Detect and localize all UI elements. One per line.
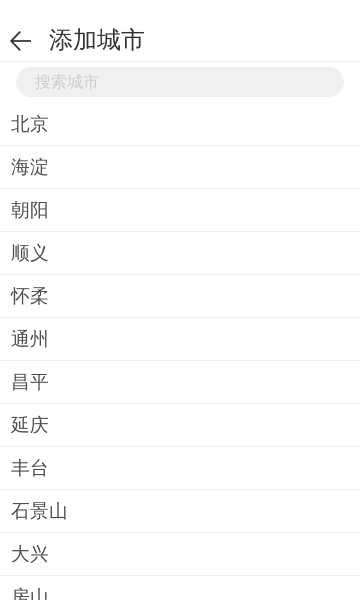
staticText: 北京 [11,112,49,135]
staticText: 丰台 [11,456,49,479]
staticText: 添加城市 [49,25,145,55]
staticText: 怀柔 [11,284,49,307]
button[interactable]: 大兴 [0,533,360,576]
staticText: 房山 [11,585,49,600]
staticText: 顺义 [11,241,49,264]
staticText: 海淀 [11,155,49,178]
button[interactable]: 丰台 [0,447,360,490]
button[interactable]: 延庆 [0,404,360,447]
staticText: 石景山 [11,499,68,522]
button[interactable]: 石景山 [0,490,360,533]
button[interactable]: 搜索城市 [0,62,360,103]
button[interactable]: 昌平 [0,361,360,404]
staticText: 大兴 [11,542,49,565]
staticText: 搜索城市 [35,72,99,92]
button[interactable]: 怀柔 [0,275,360,318]
button[interactable]: 海淀 [0,146,360,189]
button[interactable]: 通州 [0,318,360,361]
button[interactable]: 北京 [0,103,360,146]
staticText: 朝阳 [11,198,49,221]
button[interactable]: 朝阳 [0,189,360,232]
staticText: 昌平 [11,370,49,393]
staticText: 通州 [11,327,49,350]
button[interactable]: 顺义 [0,232,360,275]
button[interactable]: Back [0,19,49,61]
staticText: 延庆 [11,413,49,436]
button[interactable]: 房山 [0,576,360,600]
